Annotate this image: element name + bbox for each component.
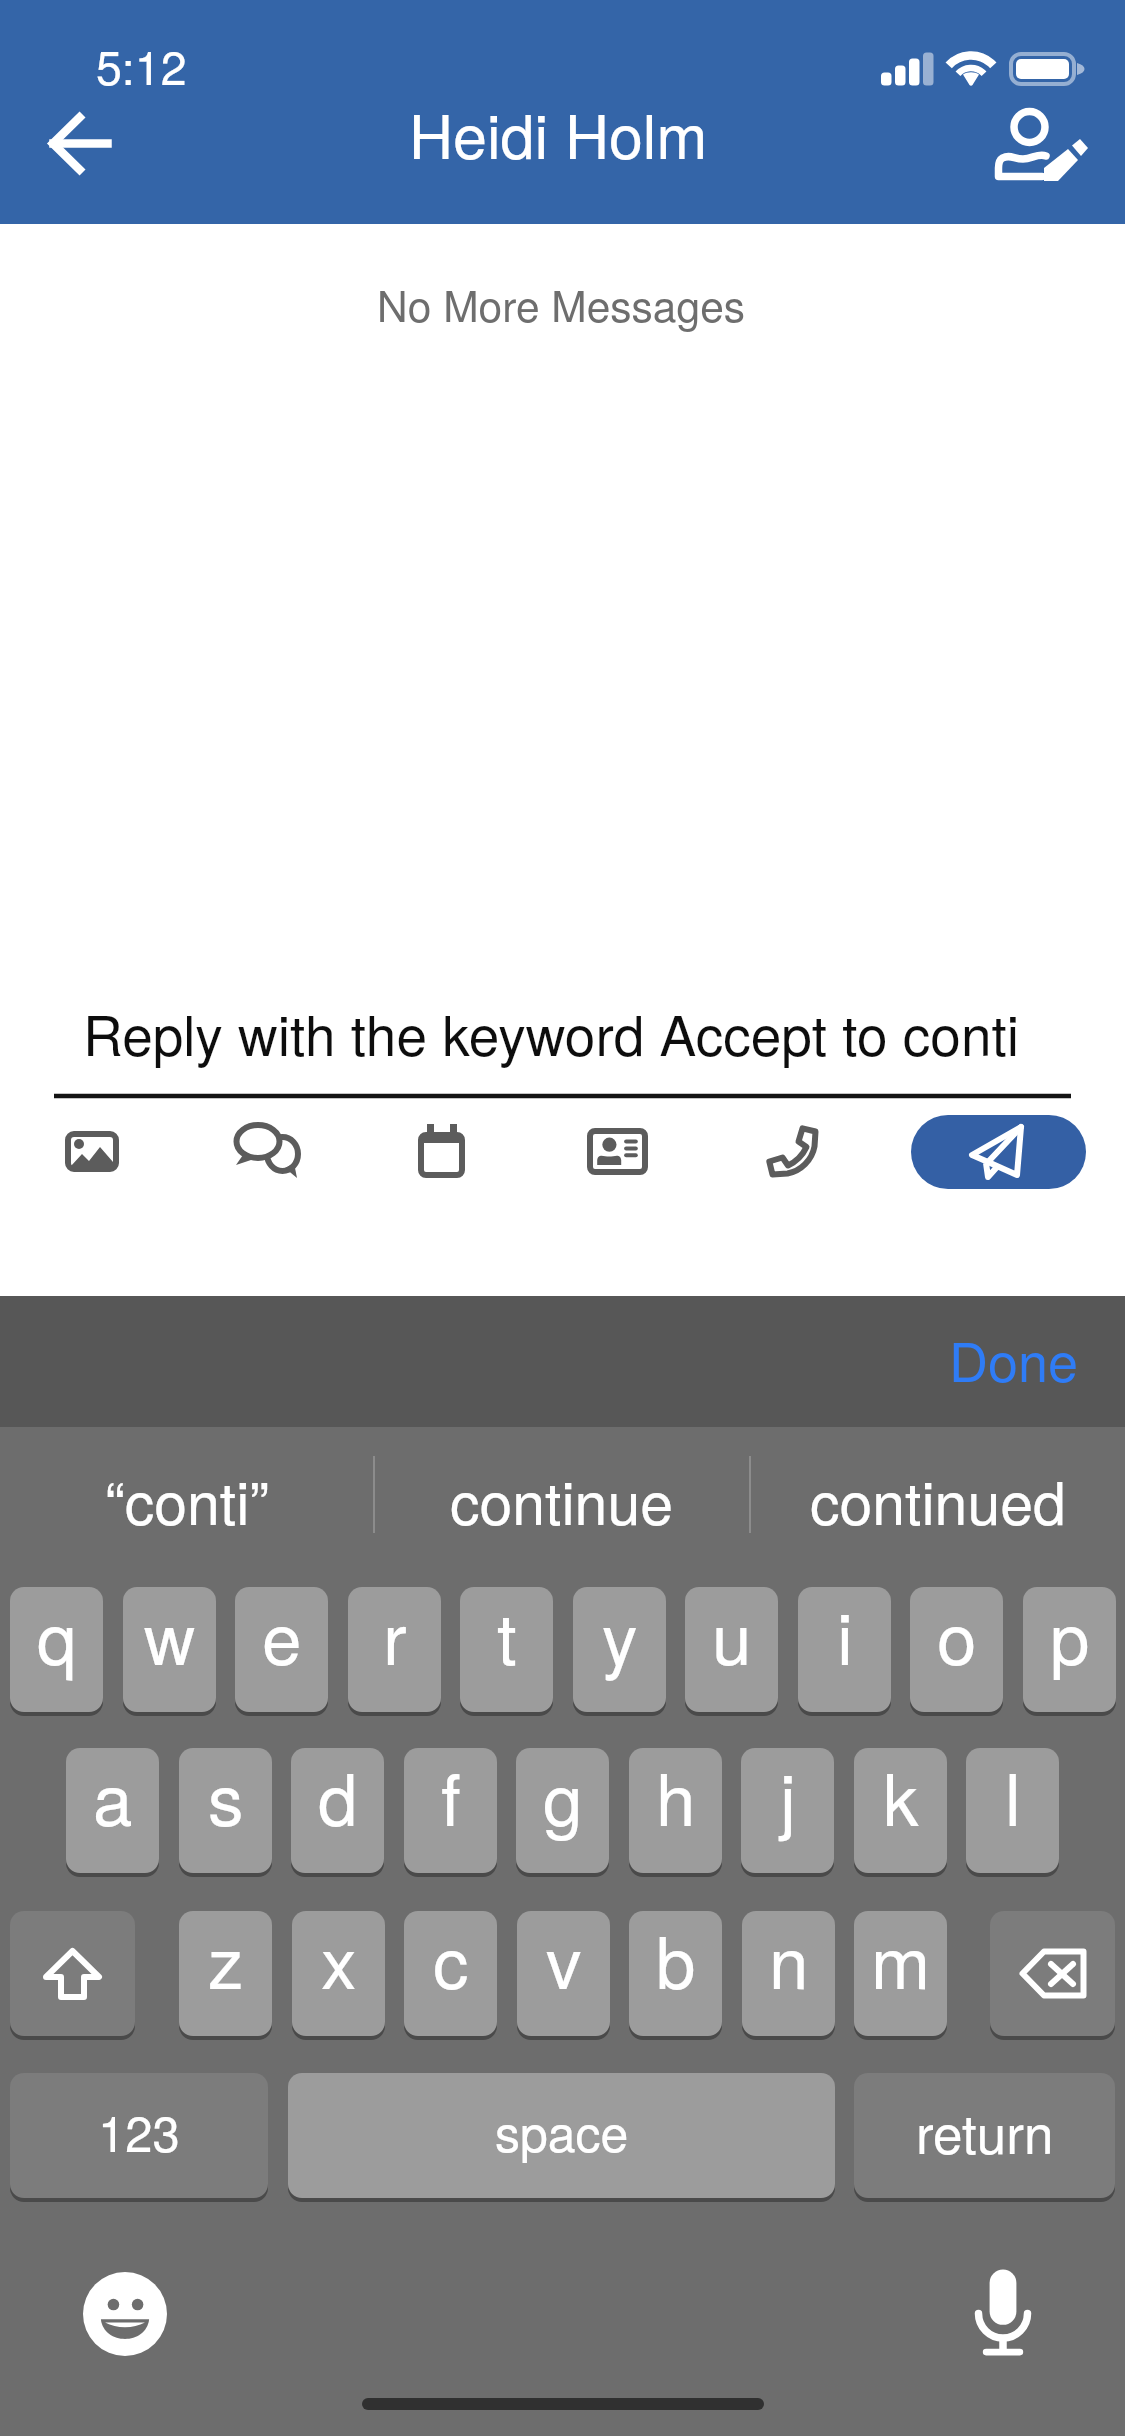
button[interactable]: Shift [10, 1911, 135, 2036]
staticText: z [208, 1911, 244, 2009]
button[interactable]: v [517, 1911, 610, 2036]
button[interactable]: s [179, 1748, 272, 1873]
button[interactable]: q [10, 1587, 103, 1712]
button[interactable]: r [348, 1587, 441, 1712]
staticText: return [916, 2093, 1054, 2169]
staticText: a [93, 1748, 133, 1846]
staticText: space [495, 2095, 629, 2167]
staticText: “conti” [105, 1457, 269, 1541]
staticText: j [780, 1748, 796, 1846]
button[interactable]: 123 [10, 2073, 268, 2198]
button[interactable]: g [516, 1748, 609, 1873]
button[interactable]: y [573, 1587, 666, 1712]
button[interactable]: Contact card [582, 1116, 652, 1186]
staticText: r [383, 1587, 407, 1685]
staticText: n [769, 1911, 809, 2009]
staticText: 5:12 [96, 32, 187, 99]
staticText: u [712, 1587, 752, 1685]
button[interactable]: j [741, 1748, 834, 1873]
staticText: o [937, 1587, 977, 1685]
button[interactable]: b [629, 1911, 722, 2036]
button[interactable]: k [854, 1748, 947, 1873]
staticText: continue [450, 1457, 674, 1541]
button[interactable]: Done [931, 1307, 1097, 1416]
button[interactable]: Send [911, 1115, 1086, 1189]
button[interactable]: l [966, 1748, 1059, 1873]
staticText: v [546, 1911, 582, 2009]
button[interactable]: e [235, 1587, 328, 1712]
staticText: g [543, 1748, 583, 1846]
button[interactable]: a [66, 1748, 159, 1873]
button[interactable]: i [798, 1587, 891, 1712]
staticText: x [321, 1911, 357, 2009]
button[interactable]: Call [757, 1116, 827, 1186]
button[interactable]: d [291, 1748, 384, 1873]
button[interactable]: Dictation [962, 2268, 1046, 2358]
button[interactable]: Edit contact [990, 100, 1100, 190]
staticText: d [318, 1748, 358, 1846]
button[interactable]: u [685, 1587, 778, 1712]
staticText: i [837, 1587, 853, 1685]
staticText: No More Messages [377, 273, 746, 334]
button[interactable]: Templates [232, 1116, 302, 1186]
staticText: f [441, 1748, 461, 1846]
button[interactable]: “conti” [0, 1427, 373, 1587]
button[interactable]: n [742, 1911, 835, 2036]
button[interactable]: Emoji keyboard [83, 2272, 167, 2356]
staticText: 123 [98, 2096, 180, 2166]
staticText: Reply with the keyword Accept to conti [83, 993, 1019, 1072]
button[interactable]: return [854, 2073, 1115, 2198]
button[interactable]: Calendar [407, 1116, 477, 1186]
staticText: Done [949, 1320, 1079, 1397]
staticText: m [871, 1911, 931, 2009]
staticText: b [656, 1911, 696, 2009]
button[interactable]: c [404, 1911, 497, 2036]
staticText: y [602, 1587, 638, 1685]
staticText: e [262, 1587, 302, 1685]
button[interactable]: t [460, 1587, 553, 1712]
button[interactable]: z [179, 1911, 272, 2036]
staticText: w [144, 1587, 196, 1685]
button[interactable]: w [123, 1587, 216, 1712]
button[interactable]: continued [751, 1427, 1125, 1587]
staticText: h [656, 1748, 696, 1846]
button[interactable]: h [629, 1748, 722, 1873]
staticText: l [1005, 1748, 1021, 1846]
staticText: Heidi Holm [409, 89, 708, 176]
staticText: c [433, 1911, 469, 2009]
staticText: k [883, 1748, 919, 1846]
button[interactable]: m [854, 1911, 947, 2036]
button[interactable]: p [1023, 1587, 1116, 1712]
staticText: q [37, 1587, 77, 1685]
button[interactable]: Back [20, 88, 132, 200]
button[interactable]: Backspace [990, 1911, 1115, 2036]
staticText: p [1050, 1587, 1090, 1685]
button[interactable]: continue [375, 1427, 749, 1587]
staticText: s [208, 1748, 244, 1846]
staticText: continued [810, 1457, 1066, 1541]
button[interactable]: Image [57, 1116, 127, 1186]
button[interactable]: x [292, 1911, 385, 2036]
staticText: t [497, 1587, 517, 1685]
button[interactable]: space [288, 2073, 835, 2198]
button[interactable]: o [910, 1587, 1003, 1712]
button[interactable]: f [404, 1748, 497, 1873]
